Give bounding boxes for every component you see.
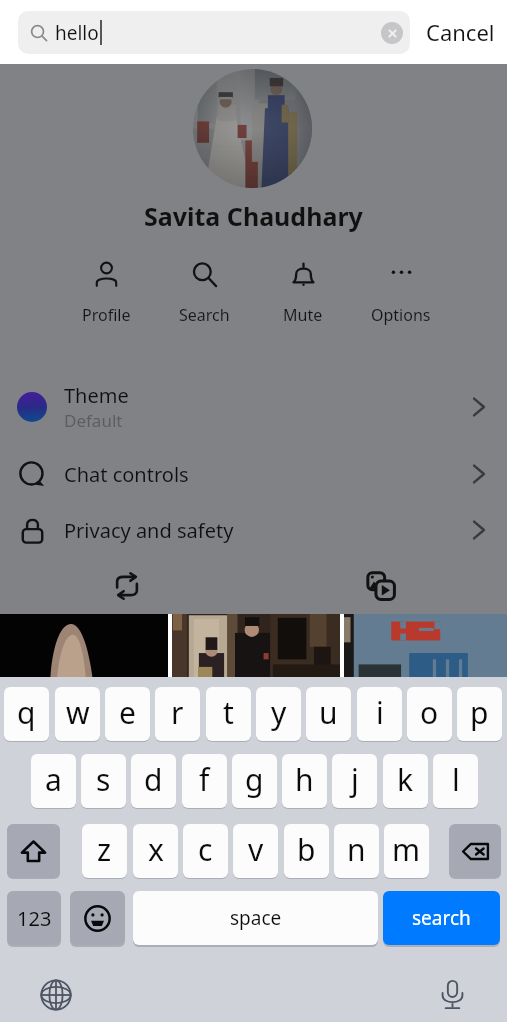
button[interactable]: Restrict bbox=[108, 567, 145, 604]
button[interactable]: m bbox=[384, 824, 429, 878]
button[interactable]: Profile photo bbox=[193, 69, 312, 188]
button[interactable]: x bbox=[133, 824, 178, 878]
button[interactable]: l bbox=[433, 754, 478, 808]
staticText: j bbox=[351, 759, 359, 800]
button[interactable]: Clear text bbox=[381, 22, 403, 44]
button[interactable]: h bbox=[282, 754, 327, 808]
staticText: Chat controls bbox=[64, 461, 189, 488]
button[interactable]: p bbox=[457, 687, 502, 741]
staticText: f bbox=[199, 759, 210, 800]
staticText: y bbox=[271, 692, 287, 733]
button[interactable]: search bbox=[383, 891, 500, 945]
button[interactable]: o bbox=[407, 687, 452, 741]
button[interactable]: s bbox=[81, 754, 126, 808]
button[interactable]: Profile bbox=[64, 254, 148, 326]
button[interactable]: j bbox=[332, 754, 377, 808]
button[interactable]: hello bbox=[18, 11, 410, 54]
button[interactable]: w bbox=[55, 687, 100, 741]
button[interactable]: r bbox=[155, 687, 200, 741]
button[interactable]: z bbox=[82, 824, 127, 878]
staticText: v bbox=[248, 829, 264, 870]
button[interactable]: f bbox=[182, 754, 227, 808]
button[interactable]: Cancel bbox=[414, 0, 507, 64]
button[interactable]: t bbox=[206, 687, 251, 741]
button[interactable]: e bbox=[105, 687, 150, 741]
staticText: h bbox=[295, 759, 314, 800]
staticText: u bbox=[319, 692, 338, 733]
button[interactable]: q bbox=[4, 687, 49, 741]
staticText: i bbox=[376, 692, 384, 733]
staticText: space bbox=[230, 905, 282, 931]
staticText: Default bbox=[64, 409, 123, 432]
button[interactable]: Emoji bbox=[70, 891, 125, 945]
staticText: k bbox=[397, 759, 414, 800]
button[interactable]: y bbox=[256, 687, 301, 741]
button[interactable]: b bbox=[284, 824, 329, 878]
staticText: d bbox=[144, 759, 163, 800]
staticText: g bbox=[245, 759, 264, 800]
button[interactable]: space bbox=[133, 891, 378, 945]
staticText: p bbox=[470, 692, 489, 733]
staticText: Privacy and safety bbox=[64, 517, 234, 544]
button[interactable]: g bbox=[232, 754, 277, 808]
button[interactable]: Mute bbox=[261, 254, 345, 326]
button[interactable]: Privacy and safety bbox=[0, 503, 507, 557]
button[interactable]: u bbox=[306, 687, 351, 741]
staticText: s bbox=[96, 759, 111, 800]
staticText: b bbox=[297, 829, 316, 870]
staticText: Theme bbox=[64, 382, 129, 409]
staticText: search bbox=[412, 905, 471, 931]
button[interactable]: Shift bbox=[7, 824, 60, 878]
staticText: Profile bbox=[82, 304, 131, 326]
staticText: q bbox=[17, 692, 36, 733]
staticText: Cancel bbox=[426, 17, 495, 47]
button[interactable]: v bbox=[233, 824, 278, 878]
staticText: 123 bbox=[17, 905, 52, 932]
button[interactable]: Voice input bbox=[430, 972, 474, 1016]
button[interactable]: d bbox=[131, 754, 176, 808]
button[interactable]: Media bbox=[362, 567, 399, 604]
staticText: z bbox=[97, 829, 112, 870]
button[interactable]: Change keyboard bbox=[34, 973, 78, 1017]
staticText: o bbox=[420, 692, 439, 733]
staticText: Search bbox=[179, 304, 230, 326]
button[interactable]: i bbox=[357, 687, 402, 741]
button[interactable]: k bbox=[383, 754, 428, 808]
staticText: Options bbox=[371, 304, 431, 326]
staticText: e bbox=[119, 692, 136, 733]
staticText: r bbox=[171, 692, 184, 733]
staticText: a bbox=[45, 759, 62, 800]
staticText: Savita Chaudhary bbox=[144, 199, 363, 233]
button[interactable]: c bbox=[183, 824, 228, 878]
staticText: Mute bbox=[283, 304, 323, 326]
staticText: m bbox=[392, 829, 421, 870]
staticText: hello bbox=[55, 20, 99, 46]
button[interactable]: a bbox=[31, 754, 76, 808]
staticText: w bbox=[66, 692, 90, 733]
staticText: c bbox=[198, 829, 213, 870]
button[interactable]: Search bbox=[162, 254, 246, 326]
button[interactable]: n bbox=[334, 824, 379, 878]
staticText: x bbox=[148, 829, 164, 870]
staticText: l bbox=[452, 759, 460, 800]
button[interactable]: Theme bbox=[0, 380, 507, 434]
staticText: n bbox=[347, 829, 366, 870]
button[interactable]: 123 bbox=[7, 891, 61, 945]
button[interactable]: Backspace bbox=[449, 824, 501, 878]
button[interactable]: Chat controls bbox=[0, 447, 507, 501]
button[interactable]: Options bbox=[359, 254, 443, 326]
staticText: t bbox=[223, 692, 234, 733]
